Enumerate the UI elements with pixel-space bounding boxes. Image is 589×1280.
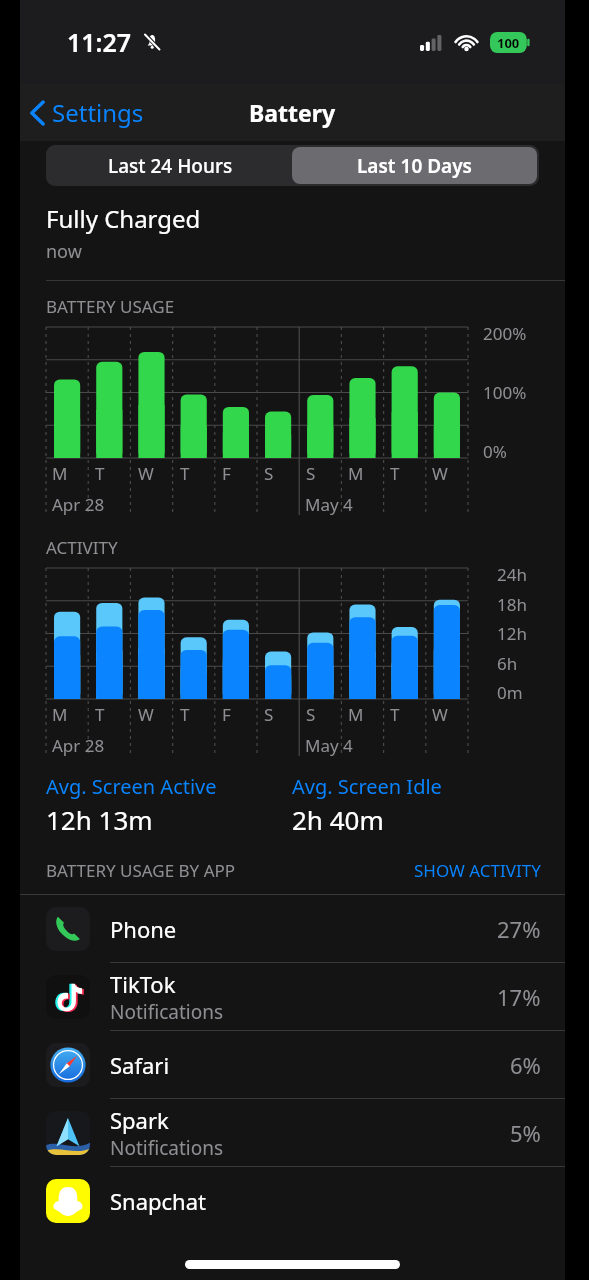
staticText: T bbox=[390, 462, 400, 485]
staticText: BATTERY USAGE bbox=[46, 295, 175, 318]
staticText: SHOW ACTIVITY bbox=[414, 859, 541, 882]
staticText: M bbox=[348, 703, 364, 726]
button[interactable]: SHOW ACTIVITY bbox=[414, 859, 541, 882]
staticText: W bbox=[138, 462, 154, 485]
staticText: Spark bbox=[110, 1105, 169, 1135]
staticText: 17% bbox=[497, 982, 541, 1012]
staticText: M bbox=[348, 462, 364, 485]
staticText: S bbox=[264, 703, 274, 726]
staticText: 6h bbox=[497, 652, 518, 675]
button[interactable]: Spark bbox=[20, 1099, 565, 1166]
staticText: Snapchat bbox=[110, 1186, 206, 1216]
staticText: 24h bbox=[497, 563, 527, 586]
staticText: Safari bbox=[110, 1050, 170, 1080]
staticText: W bbox=[432, 703, 448, 726]
staticText: 27% bbox=[497, 914, 541, 944]
staticText: 18h bbox=[497, 593, 527, 616]
staticText: 200% bbox=[483, 322, 527, 345]
staticText: Apr 28 bbox=[52, 493, 105, 516]
staticText: S bbox=[264, 462, 274, 485]
button[interactable]: Phone bbox=[20, 895, 565, 962]
staticText: 11:27 bbox=[67, 25, 132, 59]
staticText: ACTIVITY bbox=[46, 536, 118, 559]
staticText: Fully Charged bbox=[46, 202, 201, 235]
button[interactable]: Last 10 Days bbox=[292, 147, 537, 184]
staticText: Battery bbox=[249, 97, 336, 128]
staticText: W bbox=[138, 703, 154, 726]
staticText: 0m bbox=[497, 681, 523, 704]
staticText: 0% bbox=[483, 440, 507, 463]
staticText: Notifications bbox=[110, 999, 224, 1025]
staticText: M bbox=[52, 462, 68, 485]
staticText: Settings bbox=[52, 96, 144, 129]
staticText: S bbox=[306, 462, 316, 485]
staticText: F bbox=[222, 703, 231, 726]
button[interactable]: TikTok bbox=[20, 963, 565, 1030]
staticText: S bbox=[306, 703, 316, 726]
staticText: 100% bbox=[483, 381, 527, 404]
staticText: May 4 bbox=[305, 734, 353, 757]
staticText: W bbox=[432, 462, 448, 485]
staticText: Last 10 Days bbox=[357, 153, 472, 179]
staticText: TikTok bbox=[110, 969, 176, 999]
staticText: Notifications bbox=[110, 1135, 224, 1161]
staticText: F bbox=[222, 462, 231, 485]
staticText: 5% bbox=[510, 1118, 541, 1148]
button[interactable]: Settings bbox=[20, 90, 154, 135]
staticText: T bbox=[180, 462, 190, 485]
staticText: M bbox=[52, 703, 68, 726]
staticText: 2h 40m bbox=[292, 802, 384, 837]
staticText: 100 bbox=[497, 34, 520, 52]
staticText: now bbox=[46, 239, 82, 264]
staticText: Phone bbox=[110, 914, 177, 944]
staticText: Avg. Screen Idle bbox=[292, 773, 442, 800]
staticText: Last 24 Hours bbox=[108, 153, 233, 179]
staticText: 6% bbox=[510, 1050, 541, 1080]
staticText: T bbox=[390, 703, 400, 726]
staticText: 12h bbox=[497, 622, 527, 645]
button[interactable]: Snapchat bbox=[20, 1167, 565, 1234]
staticText: T bbox=[180, 703, 190, 726]
staticText: T bbox=[95, 462, 105, 485]
staticText: BATTERY USAGE BY APP bbox=[46, 859, 236, 882]
staticText: Avg. Screen Active bbox=[46, 773, 217, 800]
staticText: 12h 13m bbox=[46, 802, 153, 837]
button[interactable]: Last 24 Hours bbox=[48, 147, 292, 184]
staticText: Apr 28 bbox=[52, 734, 105, 757]
button[interactable]: Safari bbox=[20, 1031, 565, 1098]
staticText: May 4 bbox=[305, 493, 353, 516]
staticText: T bbox=[95, 703, 105, 726]
